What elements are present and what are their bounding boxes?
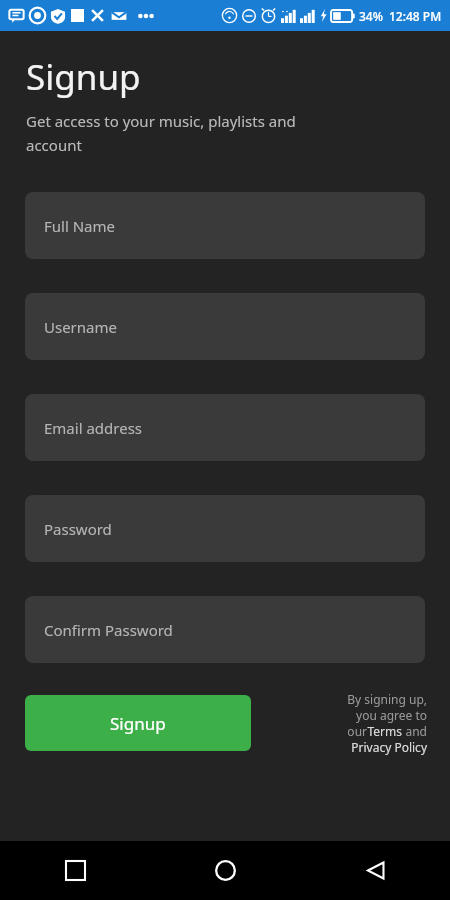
- button[interactable]: Username: [25, 293, 425, 360]
- button[interactable]: Email address: [25, 394, 425, 461]
- staticText: Full Name: [44, 216, 115, 236]
- button[interactable]: By signing up,: [344, 691, 427, 755]
- button[interactable]: Confirm Password: [25, 596, 425, 663]
- button[interactable]: Signup: [25, 695, 251, 751]
- button[interactable]: Back: [300, 841, 450, 900]
- staticText: Signup: [110, 712, 166, 735]
- staticText: Confirm Password: [44, 620, 173, 640]
- button[interactable]: Recent apps: [0, 841, 150, 900]
- staticText: Email address: [44, 418, 143, 438]
- staticText: Signup: [26, 53, 141, 101]
- button[interactable]: Password: [25, 495, 425, 562]
- staticText: By signing up,: [347, 691, 427, 707]
- staticText: and: [402, 723, 427, 739]
- button[interactable]: Full Name: [25, 192, 425, 259]
- staticText: Get access to your music, playlists and …: [26, 111, 296, 155]
- staticText: Terms: [367, 723, 402, 739]
- staticText: 12:48 PM: [389, 8, 442, 24]
- button[interactable]: Home: [150, 841, 300, 900]
- staticText: Username: [44, 317, 117, 337]
- staticText: Privacy Policy: [351, 739, 427, 755]
- staticText: Password: [44, 519, 112, 539]
- staticText: our: [344, 723, 367, 739]
- staticText: you agree to: [356, 707, 427, 723]
- staticText: 34%: [359, 8, 383, 24]
